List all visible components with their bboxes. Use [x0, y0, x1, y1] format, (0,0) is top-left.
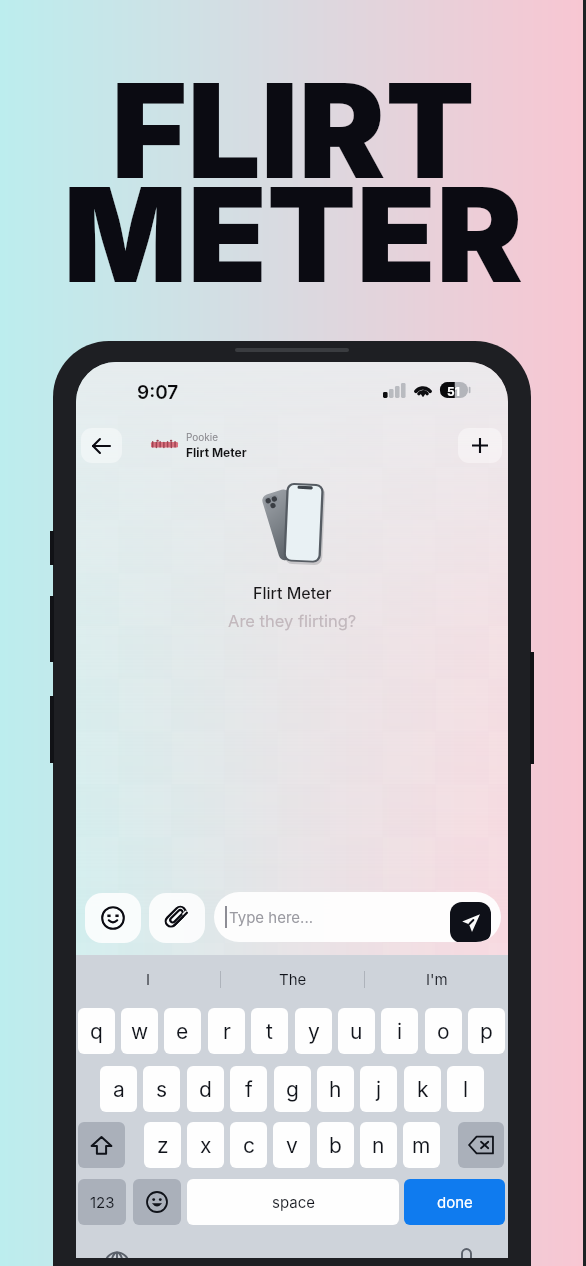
- staticText: METER: [63, 156, 523, 313]
- button[interactable]: z: [144, 1122, 181, 1168]
- staticText: w: [131, 1019, 149, 1044]
- staticText: b: [329, 1133, 342, 1158]
- staticText: The: [279, 970, 307, 988]
- button[interactable]: c: [230, 1122, 267, 1168]
- button[interactable]: b: [317, 1122, 354, 1168]
- staticText: Pookie: [186, 431, 219, 443]
- staticText: 51: [447, 384, 460, 399]
- staticText: e: [176, 1019, 189, 1044]
- staticText: y: [308, 1019, 320, 1044]
- button[interactable]: a: [100, 1066, 137, 1112]
- button[interactable]: o: [425, 1008, 462, 1054]
- button[interactable]: t: [251, 1008, 288, 1054]
- button[interactable]: n: [360, 1122, 397, 1168]
- button[interactable]: Attach: [149, 893, 205, 943]
- button[interactable]: e: [164, 1008, 201, 1054]
- staticText: g: [286, 1077, 299, 1102]
- button[interactable]: i: [381, 1008, 418, 1054]
- staticText: x: [200, 1133, 212, 1158]
- button[interactable]: x: [187, 1122, 224, 1168]
- button[interactable]: Back: [81, 428, 122, 463]
- staticText: 123: [90, 1193, 115, 1211]
- button[interactable]: g: [274, 1066, 311, 1112]
- button[interactable]: 123: [78, 1179, 126, 1225]
- staticText: l: [463, 1077, 469, 1102]
- button[interactable]: l: [447, 1066, 484, 1112]
- button[interactable]: Change keyboard: [104, 1250, 130, 1258]
- button[interactable]: j: [360, 1066, 397, 1112]
- button[interactable]: Dictate: [461, 1248, 472, 1258]
- staticText: space: [272, 1193, 315, 1211]
- button[interactable]: v: [273, 1122, 310, 1168]
- button[interactable]: Type here...: [214, 892, 501, 942]
- staticText: Are they flirting?: [228, 611, 357, 631]
- button[interactable]: u: [338, 1008, 375, 1054]
- button[interactable]: space: [187, 1179, 399, 1225]
- staticText: t: [266, 1019, 273, 1044]
- button[interactable]: I'm: [365, 955, 508, 1003]
- staticText: Type here...: [229, 908, 314, 926]
- button[interactable]: backspace: [458, 1122, 504, 1168]
- staticText: FLIRT: [111, 52, 475, 209]
- button[interactable]: d: [187, 1066, 224, 1112]
- button[interactable]: r: [208, 1008, 245, 1054]
- button[interactable]: Emoji: [85, 893, 141, 943]
- button[interactable]: q: [78, 1008, 115, 1054]
- staticText: f: [245, 1077, 253, 1102]
- staticText: 9:07: [137, 381, 179, 404]
- staticText: n: [372, 1133, 385, 1158]
- button[interactable]: Send: [450, 902, 491, 942]
- staticText: u: [350, 1019, 363, 1044]
- button[interactable]: h: [317, 1066, 354, 1112]
- staticText: I: [146, 970, 151, 988]
- staticText: z: [157, 1133, 169, 1158]
- button[interactable]: y: [295, 1008, 332, 1054]
- staticText: c: [243, 1133, 255, 1158]
- staticText: q: [90, 1019, 103, 1044]
- button[interactable]: p: [468, 1008, 505, 1054]
- button[interactable]: k: [404, 1066, 441, 1112]
- staticText: h: [329, 1077, 342, 1102]
- button[interactable]: The: [221, 955, 364, 1003]
- staticText: p: [480, 1019, 493, 1044]
- staticText: d: [199, 1077, 212, 1102]
- button[interactable]: s: [143, 1066, 180, 1112]
- button[interactable]: Add: [458, 428, 502, 463]
- button[interactable]: shift: [78, 1122, 125, 1168]
- button[interactable]: done: [404, 1179, 505, 1225]
- button[interactable]: I: [76, 955, 220, 1003]
- staticText: Flirt Meter: [186, 445, 247, 460]
- staticText: k: [417, 1077, 429, 1102]
- staticText: m: [412, 1133, 431, 1158]
- button[interactable]: m: [403, 1122, 440, 1168]
- staticText: done: [437, 1193, 473, 1211]
- staticText: r: [223, 1019, 231, 1044]
- staticText: a: [113, 1077, 125, 1102]
- staticText: v: [286, 1133, 298, 1158]
- button[interactable]: emoji: [133, 1179, 181, 1225]
- staticText: Flirt Meter: [253, 583, 332, 602]
- button[interactable]: f: [230, 1066, 267, 1112]
- staticText: s: [156, 1077, 168, 1102]
- staticText: j: [376, 1077, 382, 1102]
- staticText: o: [437, 1019, 450, 1044]
- staticText: I'm: [426, 970, 448, 988]
- staticText: i: [397, 1019, 403, 1044]
- button[interactable]: w: [121, 1008, 158, 1054]
